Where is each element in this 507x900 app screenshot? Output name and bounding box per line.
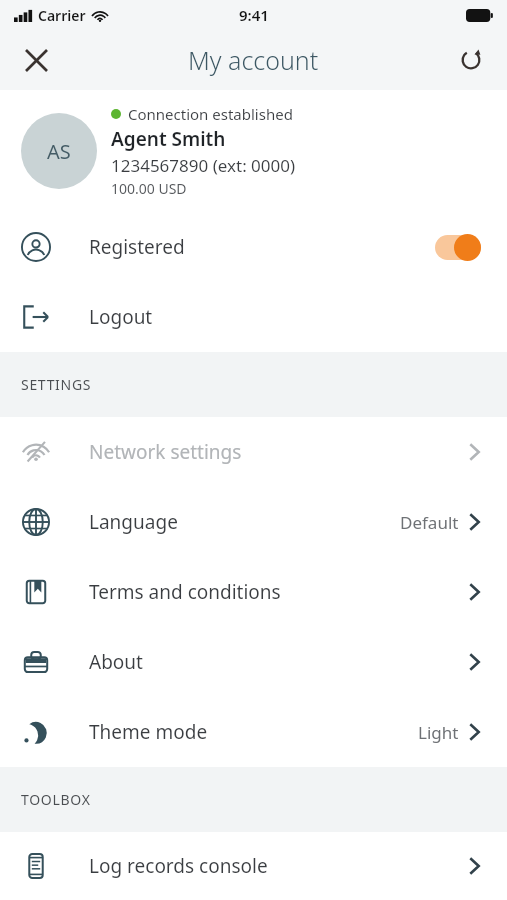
staticText: Carrier — [38, 6, 86, 25]
staticText: Light — [418, 721, 459, 744]
staticText: Registered — [89, 234, 185, 260]
staticText: Logout — [89, 304, 153, 330]
button[interactable]: Network settings — [0, 417, 507, 487]
button[interactable]: Log records console — [0, 832, 507, 900]
button[interactable]: Theme mode — [0, 697, 507, 767]
staticText: About — [89, 649, 143, 675]
staticText: Terms and conditions — [89, 579, 281, 605]
staticText: Network settings — [89, 439, 242, 465]
button[interactable]: Close — [10, 34, 62, 86]
button[interactable]: Refresh — [445, 34, 497, 86]
staticText: TOOLBOX — [21, 790, 91, 809]
button[interactable]: Logout — [0, 282, 507, 352]
staticText: AS — [47, 138, 71, 165]
button[interactable]: About — [0, 627, 507, 697]
staticText: Log records console — [89, 853, 268, 879]
staticText: Default — [400, 511, 459, 534]
staticText: 100.00 USD — [111, 179, 187, 198]
button[interactable]: AS — [0, 90, 507, 212]
button[interactable]: Terms and conditions — [0, 557, 507, 627]
staticText: My account — [188, 43, 319, 77]
staticText: Agent Smith — [111, 126, 226, 152]
staticText: SETTINGS — [21, 375, 92, 394]
staticText: Theme mode — [89, 719, 208, 745]
staticText: 9:41 — [239, 5, 269, 25]
button[interactable]: Registered — [0, 212, 507, 282]
button[interactable]: Language — [0, 487, 507, 557]
staticText: Connection established — [128, 104, 293, 124]
staticText: 1234567890 (ext: 0000) — [111, 154, 296, 177]
staticText: Language — [89, 509, 178, 535]
